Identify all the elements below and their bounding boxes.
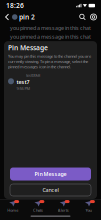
staticText: Chats: [33, 208, 43, 213]
staticText: You may pin this message to the channel …: [8, 53, 91, 69]
staticText: Pin Message: [8, 43, 48, 52]
button[interactable]: Home: [0, 199, 25, 213]
button[interactable]: Cancel: [10, 184, 91, 196]
button[interactable]: You: [76, 199, 101, 213]
staticText: Alerts: [58, 208, 69, 213]
button[interactable]: Pin Message: [10, 167, 91, 180]
button[interactable]: Chats: [25, 199, 50, 213]
staticText: test7: [16, 78, 29, 85]
staticText: Cancel: [42, 186, 58, 194]
staticText: test0068: [26, 72, 40, 78]
button[interactable]: Alerts: [50, 199, 76, 213]
button[interactable]: Settings: [88, 13, 99, 20]
staticText: 9:56 PM: [16, 86, 30, 91]
staticText: you pinned a message in this chat: [10, 24, 91, 32]
button[interactable]: Search: [77, 13, 88, 20]
staticText: Pin Message: [34, 170, 66, 178]
staticText: Home: [7, 208, 18, 213]
staticText: you pinned a message in this chat: [10, 33, 91, 40]
staticText: 18:26: [6, 1, 24, 10]
staticText: You: [85, 208, 91, 213]
staticText: pin 2: [19, 13, 35, 21]
button[interactable]: Back: [2, 11, 12, 22]
